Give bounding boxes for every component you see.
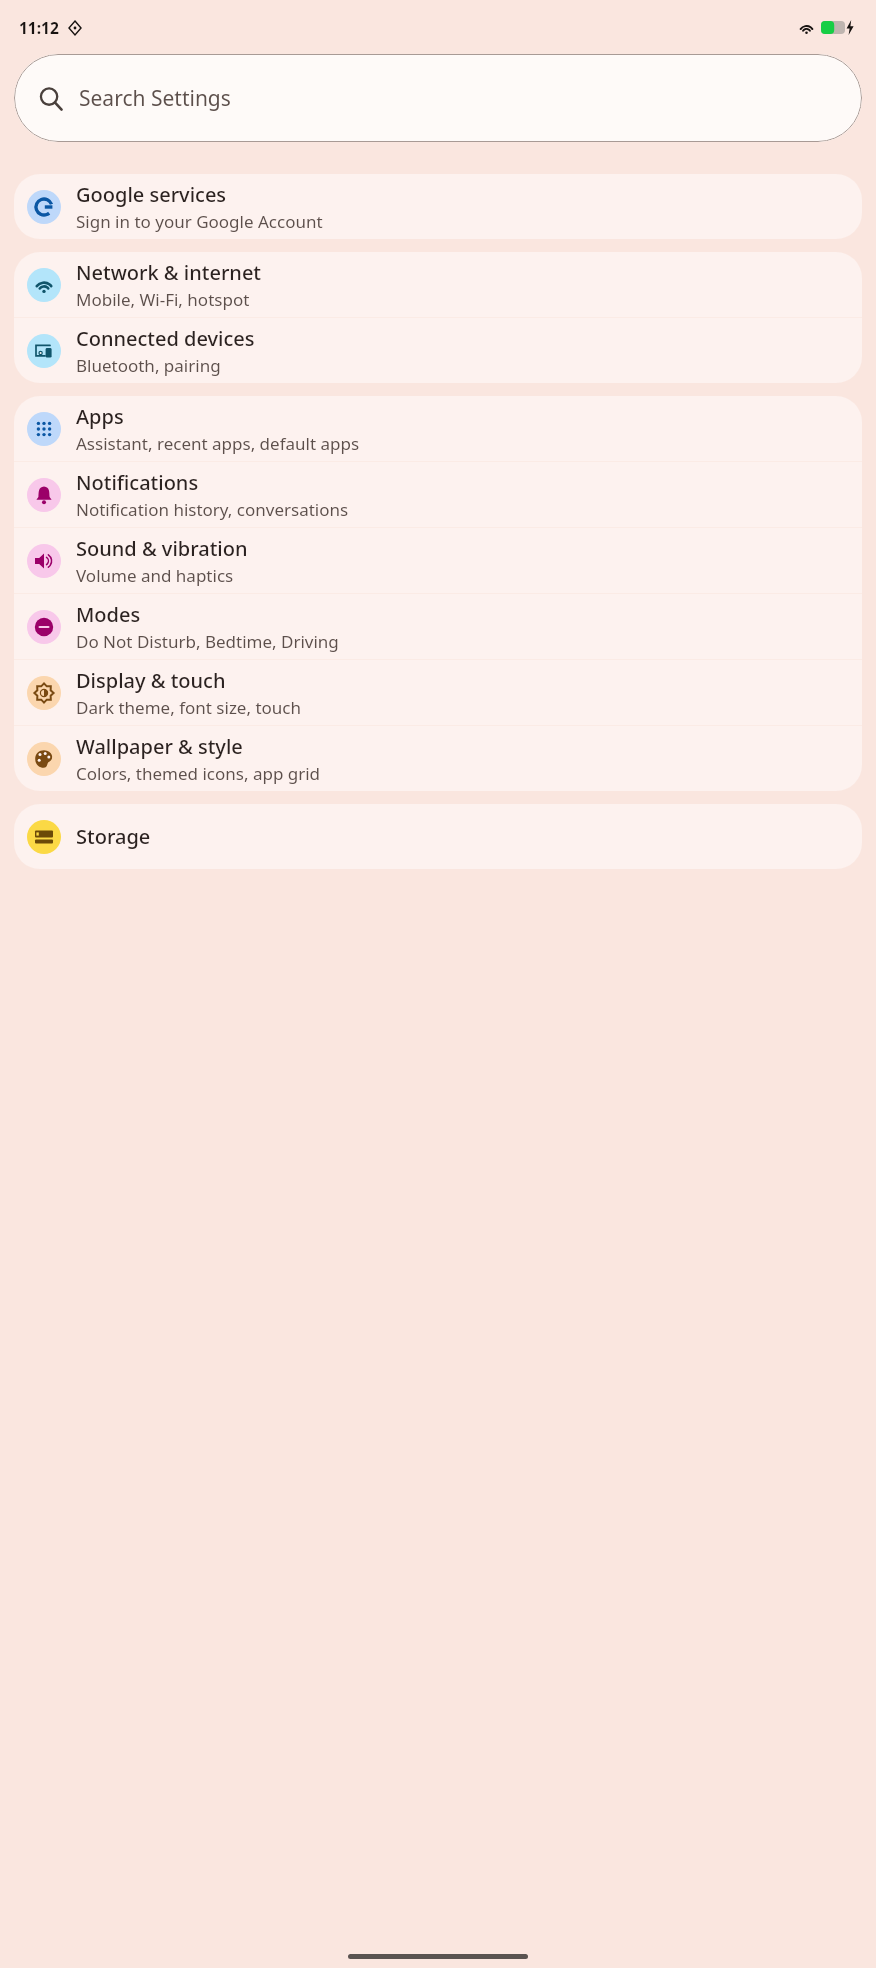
staticText: Colors, themed icons, app grid: [76, 762, 321, 785]
button[interactable]: Modes: [14, 594, 862, 659]
staticText: Do Not Disturb, Bedtime, Driving: [76, 630, 339, 653]
button[interactable]: Wallpaper & style: [14, 726, 862, 791]
staticText: Wallpaper & style: [76, 733, 243, 760]
staticText: Sound & vibration: [76, 535, 248, 562]
staticText: Mobile, Wi-Fi, hotspot: [76, 288, 250, 311]
staticText: Network & internet: [76, 259, 262, 286]
staticText: Display & touch: [76, 667, 226, 694]
staticText: Modes: [76, 601, 141, 628]
staticText: Volume and haptics: [76, 564, 234, 587]
button[interactable]: Storage: [14, 804, 862, 869]
button[interactable]: Notifications: [14, 462, 862, 527]
staticText: Connected devices: [76, 325, 255, 352]
staticText: Notification history, conversations: [76, 498, 349, 521]
staticText: Search Settings: [79, 84, 231, 113]
staticText: Notifications: [76, 469, 199, 496]
button[interactable]: Connected devices: [14, 318, 862, 383]
button[interactable]: Google services: [14, 174, 862, 239]
button[interactable]: Sound & vibration: [14, 528, 862, 593]
staticText: Storage: [76, 823, 151, 850]
button[interactable]: Display & touch: [14, 660, 862, 725]
staticText: 11:12: [19, 17, 59, 38]
staticText: Apps: [76, 403, 124, 430]
staticText: Dark theme, font size, touch: [76, 696, 302, 719]
button[interactable]: Apps: [14, 396, 862, 461]
button[interactable]: Network & internet: [14, 252, 862, 317]
staticText: Assistant, recent apps, default apps: [76, 432, 360, 455]
staticText: Bluetooth, pairing: [76, 354, 221, 377]
button[interactable]: Search Settings: [14, 54, 862, 142]
staticText: Sign in to your Google Account: [76, 210, 323, 233]
staticText: Google services: [76, 181, 227, 208]
